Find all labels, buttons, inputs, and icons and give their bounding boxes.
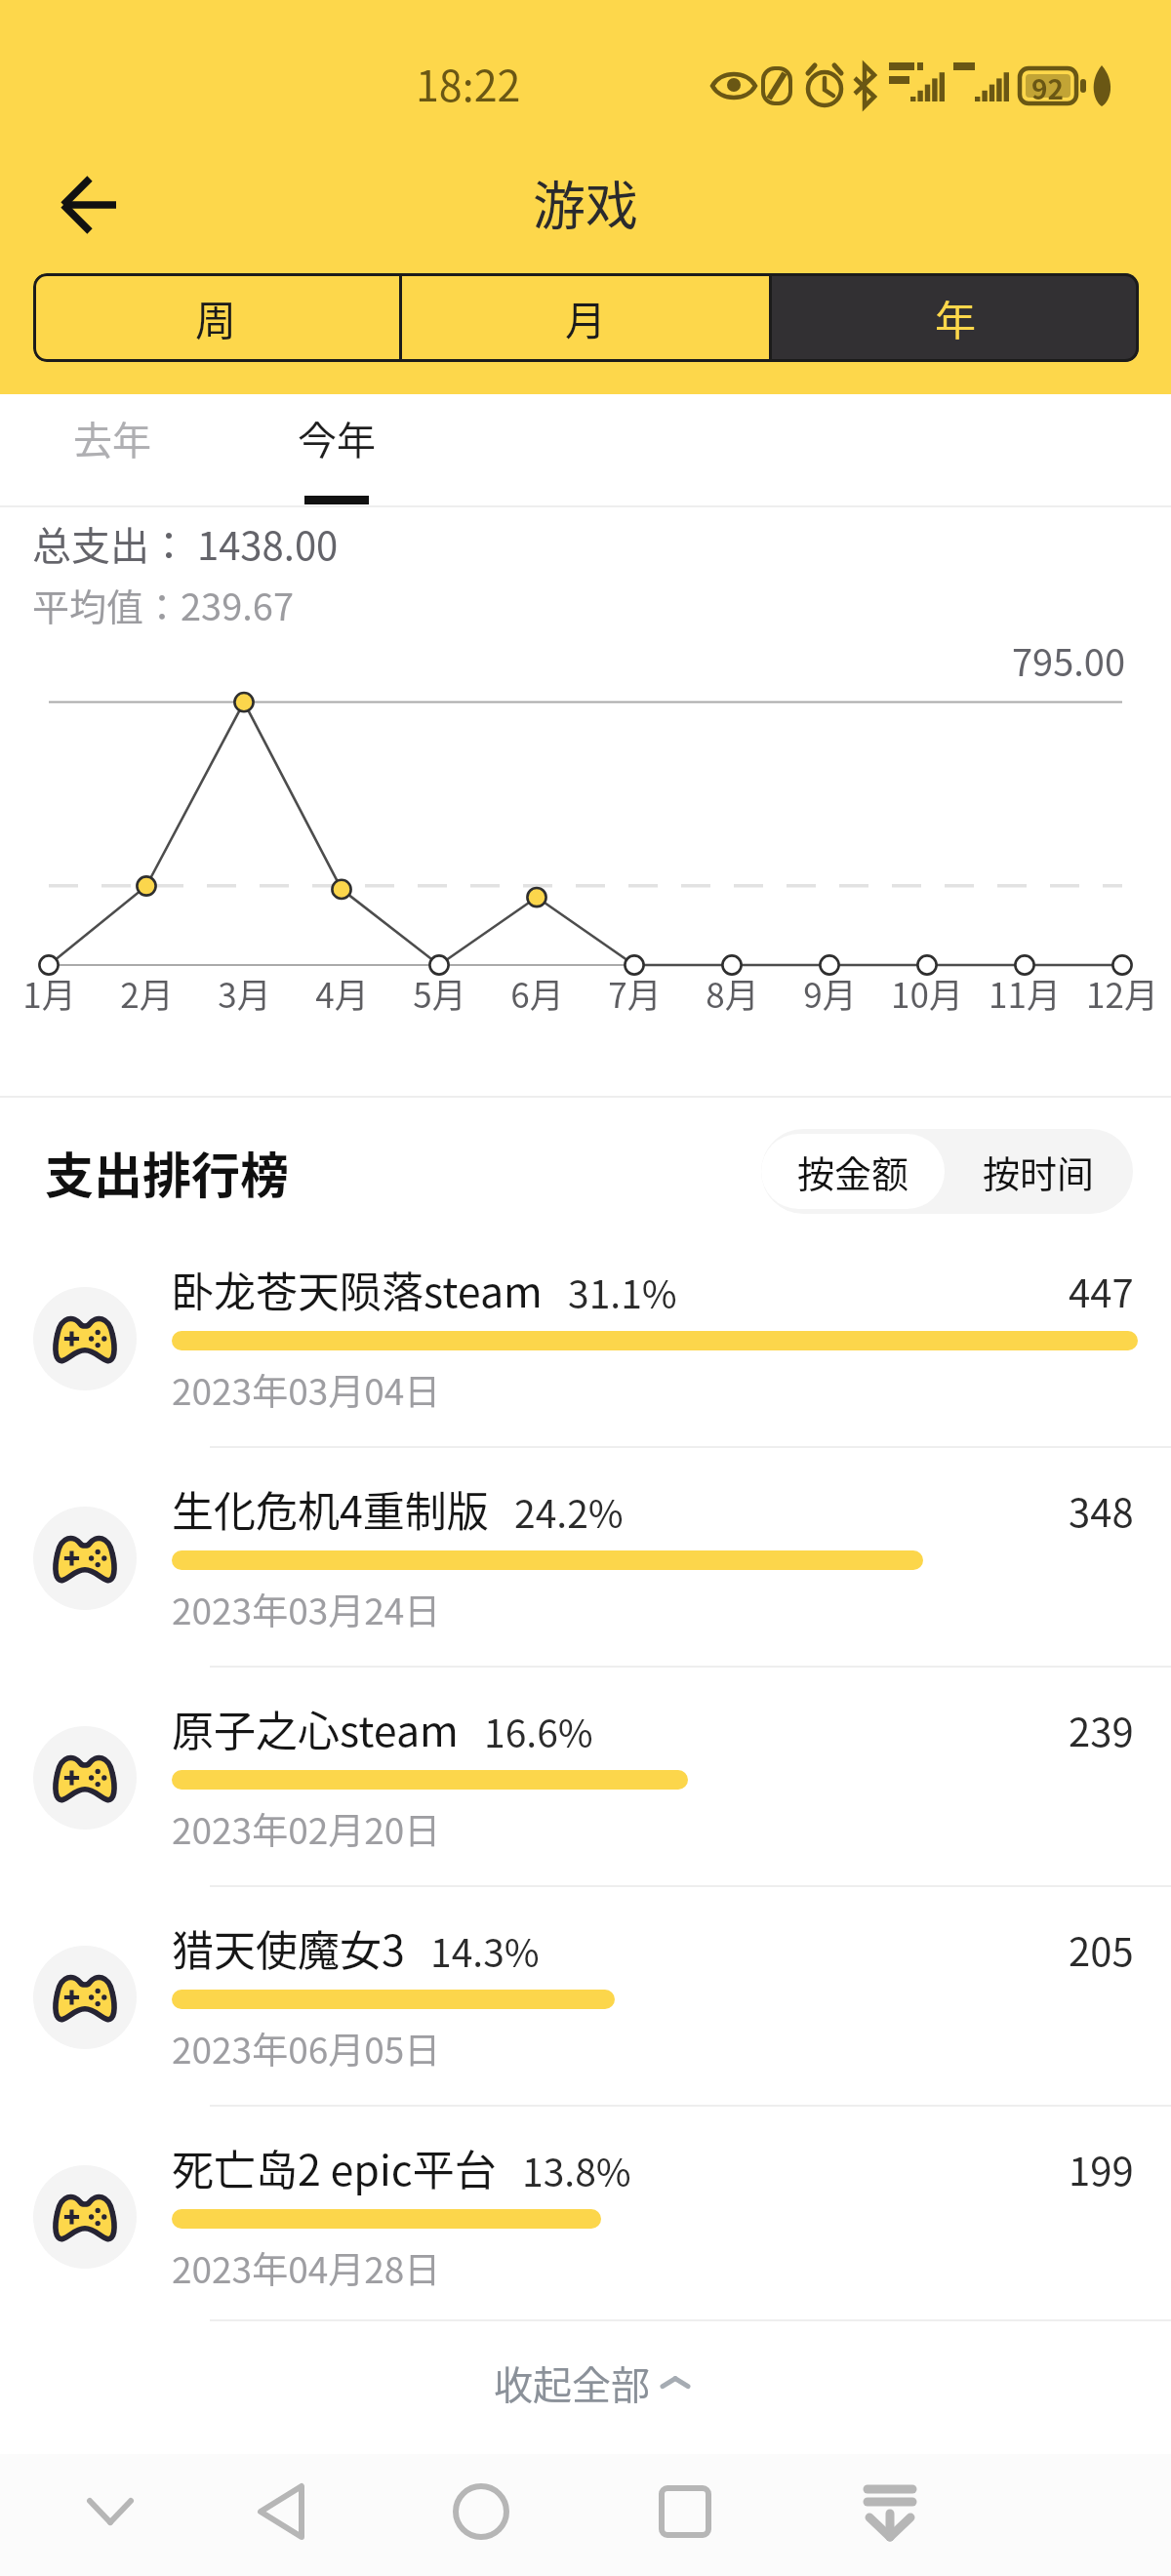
staticText: 2023年02月20日 <box>172 1802 441 1855</box>
button[interactable]: 今年 <box>278 400 395 507</box>
button[interactable]: Home <box>423 2454 540 2569</box>
staticText: 11月 <box>989 968 1061 1018</box>
staticText: 死亡岛2 epic平台 <box>172 2137 497 2197</box>
staticText: 3月 <box>218 968 271 1018</box>
staticText: 月 <box>565 288 607 347</box>
staticText: 生化危机4重制版 <box>172 1478 489 1539</box>
button[interactable]: 原子之心steam <box>0 1666 1171 1885</box>
staticText: 24.2% <box>514 1484 624 1539</box>
button[interactable]: Hide navigation bar <box>831 2454 949 2569</box>
button[interactable]: Collapse keyboard <box>52 2454 169 2569</box>
staticText: 13.8% <box>522 2143 631 2197</box>
button[interactable]: Recents <box>626 2454 744 2569</box>
staticText: 8月 <box>706 968 759 1018</box>
staticText: 9月 <box>803 968 857 1018</box>
button[interactable]: Back <box>39 154 141 256</box>
button[interactable]: 死亡岛2 epic平台 <box>0 2105 1171 2319</box>
button[interactable]: 按时间 <box>945 1129 1133 1214</box>
staticText: 今年 <box>298 410 376 466</box>
button[interactable]: 去年 <box>54 400 171 507</box>
staticText: 2023年06月05日 <box>172 2022 441 2074</box>
staticText: 原子之心steam <box>172 1698 459 1758</box>
staticText: 去年 <box>73 410 151 466</box>
staticText: 游戏 <box>533 164 638 240</box>
staticText: 平均值：239.67 <box>32 578 295 631</box>
staticText: 按金额 <box>797 1145 909 1198</box>
staticText: 92 <box>1031 68 1065 108</box>
staticText: 2023年03月24日 <box>172 1583 441 1635</box>
staticText: 199 <box>1069 2141 1134 2197</box>
staticText: 348 <box>1069 1482 1134 1539</box>
staticText: 14.3% <box>430 1923 540 1978</box>
staticText: 239 <box>1069 1702 1134 1758</box>
button[interactable]: 猎天使魔女3 <box>0 1885 1171 2105</box>
staticText: 支出排行榜 <box>45 1137 289 1207</box>
staticText: 16.6% <box>484 1704 593 1758</box>
staticText: 7月 <box>608 968 662 1018</box>
staticText: 795.00 <box>1012 633 1126 687</box>
staticText: 卧龙苍天陨落steam <box>172 1259 543 1319</box>
staticText: 2023年03月04日 <box>172 1363 441 1416</box>
button[interactable]: Back <box>222 2454 340 2569</box>
staticText: 12月 <box>1086 968 1158 1018</box>
staticText: 6月 <box>510 968 564 1018</box>
staticText: 按时间 <box>983 1145 1095 1198</box>
button[interactable]: 按金额 <box>761 1134 945 1209</box>
staticText: 2月 <box>120 968 174 1018</box>
button[interactable]: 周 <box>33 273 399 362</box>
staticText: 收起全部 <box>494 2355 650 2411</box>
staticText: 年 <box>935 288 977 347</box>
button[interactable]: 年 <box>772 273 1139 362</box>
staticText: 447 <box>1069 1263 1134 1319</box>
button[interactable]: 生化危机4重制版 <box>0 1446 1171 1666</box>
button[interactable]: 卧龙苍天陨落steam <box>0 1227 1171 1446</box>
staticText: 1月 <box>22 968 76 1018</box>
staticText: 205 <box>1069 1921 1134 1978</box>
staticText: 10月 <box>891 968 963 1018</box>
staticText: 总支出： 1438.00 <box>32 515 339 572</box>
button[interactable]: 收起全部 <box>484 2347 703 2419</box>
staticText: 4月 <box>315 968 369 1018</box>
button[interactable]: 月 <box>402 273 769 362</box>
staticText: 周 <box>195 288 237 347</box>
staticText: 2023年04月28日 <box>172 2241 441 2294</box>
staticText: 18:22 <box>416 53 521 113</box>
staticText: 猎天使魔女3 <box>172 1917 405 1978</box>
staticText: 31.1% <box>568 1265 677 1319</box>
staticText: 5月 <box>413 968 466 1018</box>
